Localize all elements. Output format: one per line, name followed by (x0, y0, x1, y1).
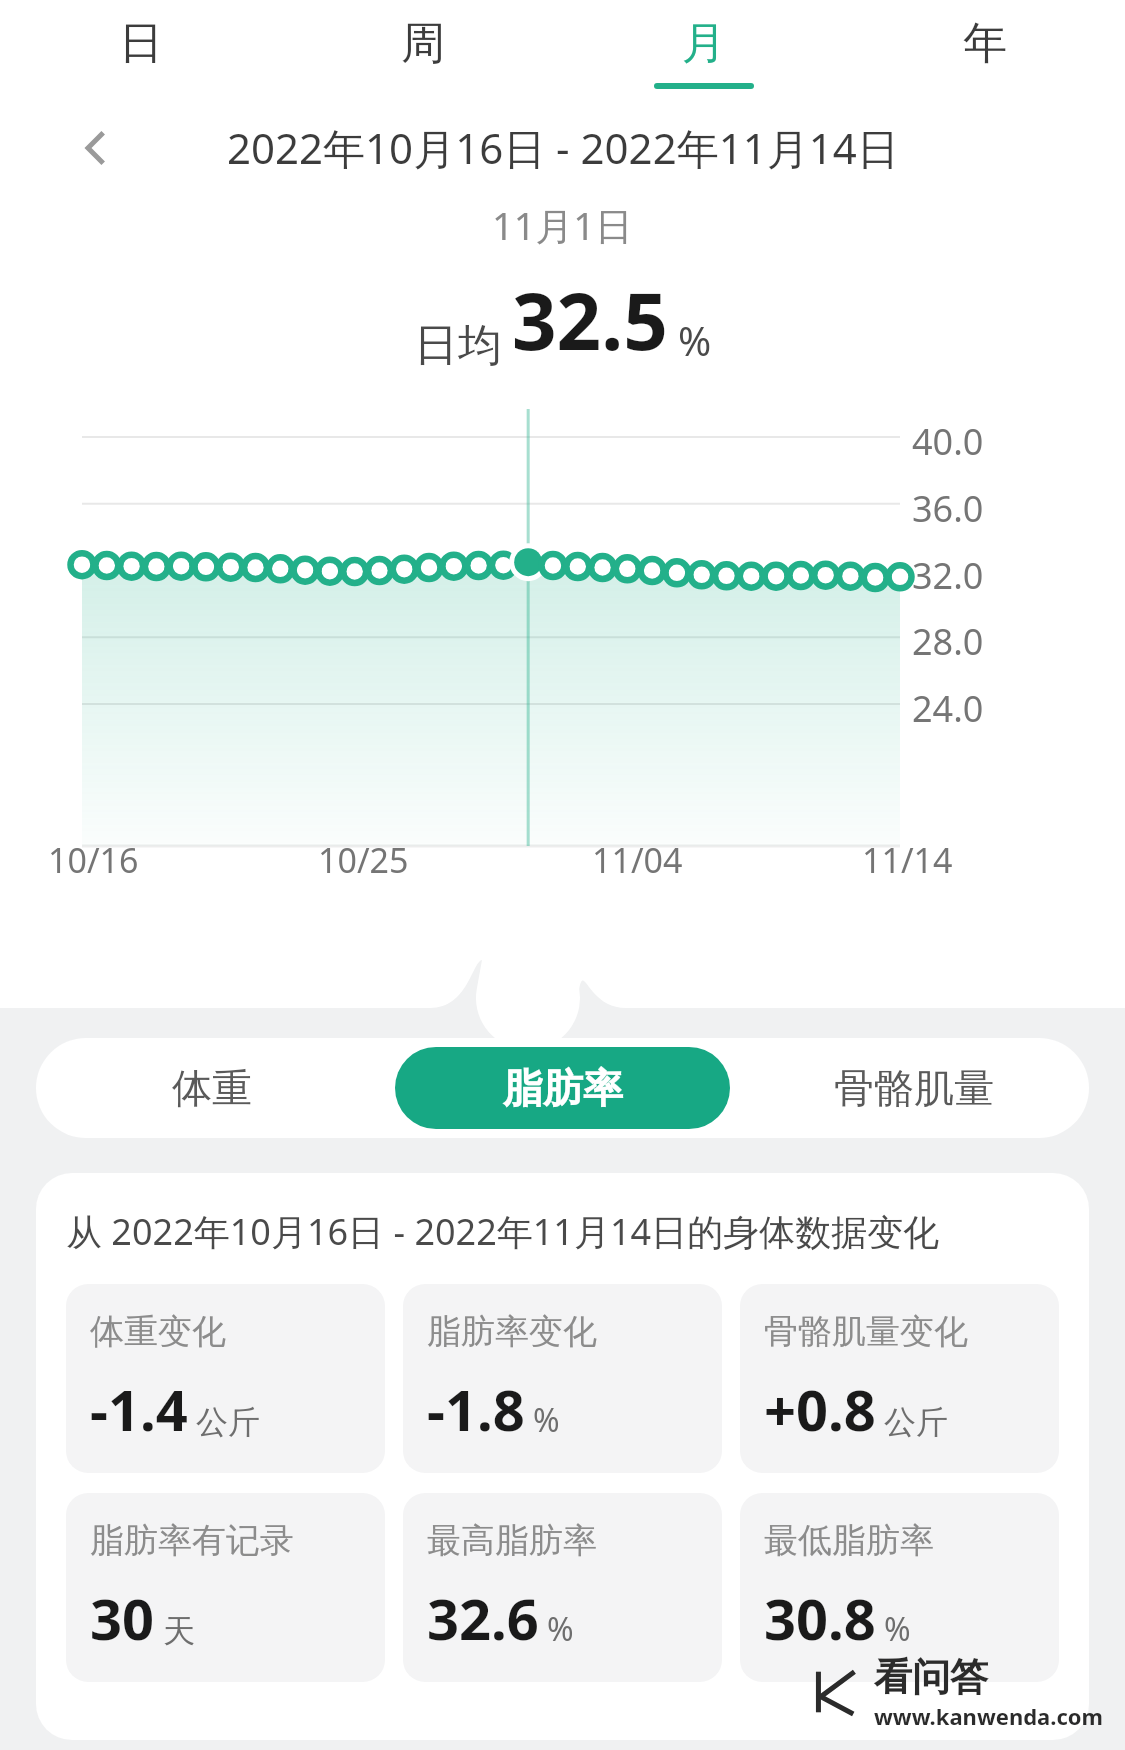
button[interactable]: 年 (844, 0, 1125, 110)
staticText: 11月1日 (0, 199, 1125, 251)
staticText: 日 (119, 16, 163, 71)
staticText: 最高脂肪率 (427, 1519, 597, 1562)
button[interactable]: 骨骼肌量变化 (740, 1284, 1059, 1473)
button[interactable]: 脂肪率 (395, 1047, 730, 1129)
staticText: 脂肪率 (503, 1063, 623, 1113)
staticText: 最低脂肪率 (764, 1519, 934, 1562)
button[interactable]: 最高脂肪率 (403, 1493, 722, 1682)
button[interactable]: 脂肪率变化 (403, 1284, 722, 1473)
staticText: www.kanwenda.com (874, 1701, 1103, 1731)
staticText: 公斤 (196, 1402, 260, 1442)
staticText: 10/16 (48, 837, 168, 883)
button[interactable]: 最低脂肪率 (740, 1493, 1059, 1682)
staticText: 周 (401, 16, 445, 71)
staticText: % (547, 1607, 574, 1651)
staticText: 32.5 (512, 267, 668, 373)
staticText: % (533, 1398, 560, 1442)
staticText: 公斤 (884, 1402, 948, 1442)
staticText: 天 (163, 1611, 195, 1651)
staticText: 骨骼肌量变化 (764, 1310, 968, 1353)
staticText: 30 (90, 1580, 155, 1656)
staticText: 月 (682, 16, 726, 71)
button[interactable]: Previous period (60, 112, 132, 184)
staticText: 40.0 (912, 417, 1022, 466)
staticText: 看问答 (874, 1653, 988, 1701)
staticText: 24.0 (912, 684, 1022, 733)
staticText: 体重变化 (90, 1310, 226, 1353)
staticText: 11/04 (592, 837, 712, 883)
staticText: 年 (963, 16, 1007, 71)
staticText: 2022年10月16日 - 2022年11月14日 (227, 119, 899, 176)
button[interactable]: 骨骼肌量 (746, 1047, 1081, 1129)
staticText: 30.8 (764, 1580, 876, 1656)
button[interactable]: 体重 (44, 1047, 379, 1129)
staticText: 骨骼肌量 (834, 1063, 994, 1113)
staticText: +0.8 (764, 1371, 876, 1447)
button[interactable]: 体重变化 (66, 1284, 385, 1473)
staticText: -1.4 (90, 1371, 188, 1447)
button[interactable]: 周 (282, 0, 563, 110)
button[interactable]: 日 (0, 0, 282, 110)
staticText: 从 2022年10月16日 - 2022年11月14日的身体数据变化 (66, 1207, 940, 1256)
staticText: 脂肪率有记录 (90, 1519, 294, 1562)
button[interactable]: 脂肪率有记录 (66, 1493, 385, 1682)
staticText: 日均 (414, 318, 502, 373)
button[interactable]: 月 (563, 0, 844, 110)
staticText: % (884, 1607, 911, 1651)
staticText: 10/25 (318, 837, 438, 883)
staticText: 28.0 (912, 617, 1022, 666)
staticText: 32.0 (912, 551, 1022, 600)
staticText: 11/14 (862, 837, 982, 883)
staticText: -1.8 (427, 1371, 525, 1447)
staticText: 脂肪率变化 (427, 1310, 597, 1353)
staticText: % (678, 313, 712, 367)
staticText: 36.0 (912, 484, 1022, 533)
staticText: 32.6 (427, 1580, 539, 1656)
staticText: 体重 (172, 1063, 252, 1113)
